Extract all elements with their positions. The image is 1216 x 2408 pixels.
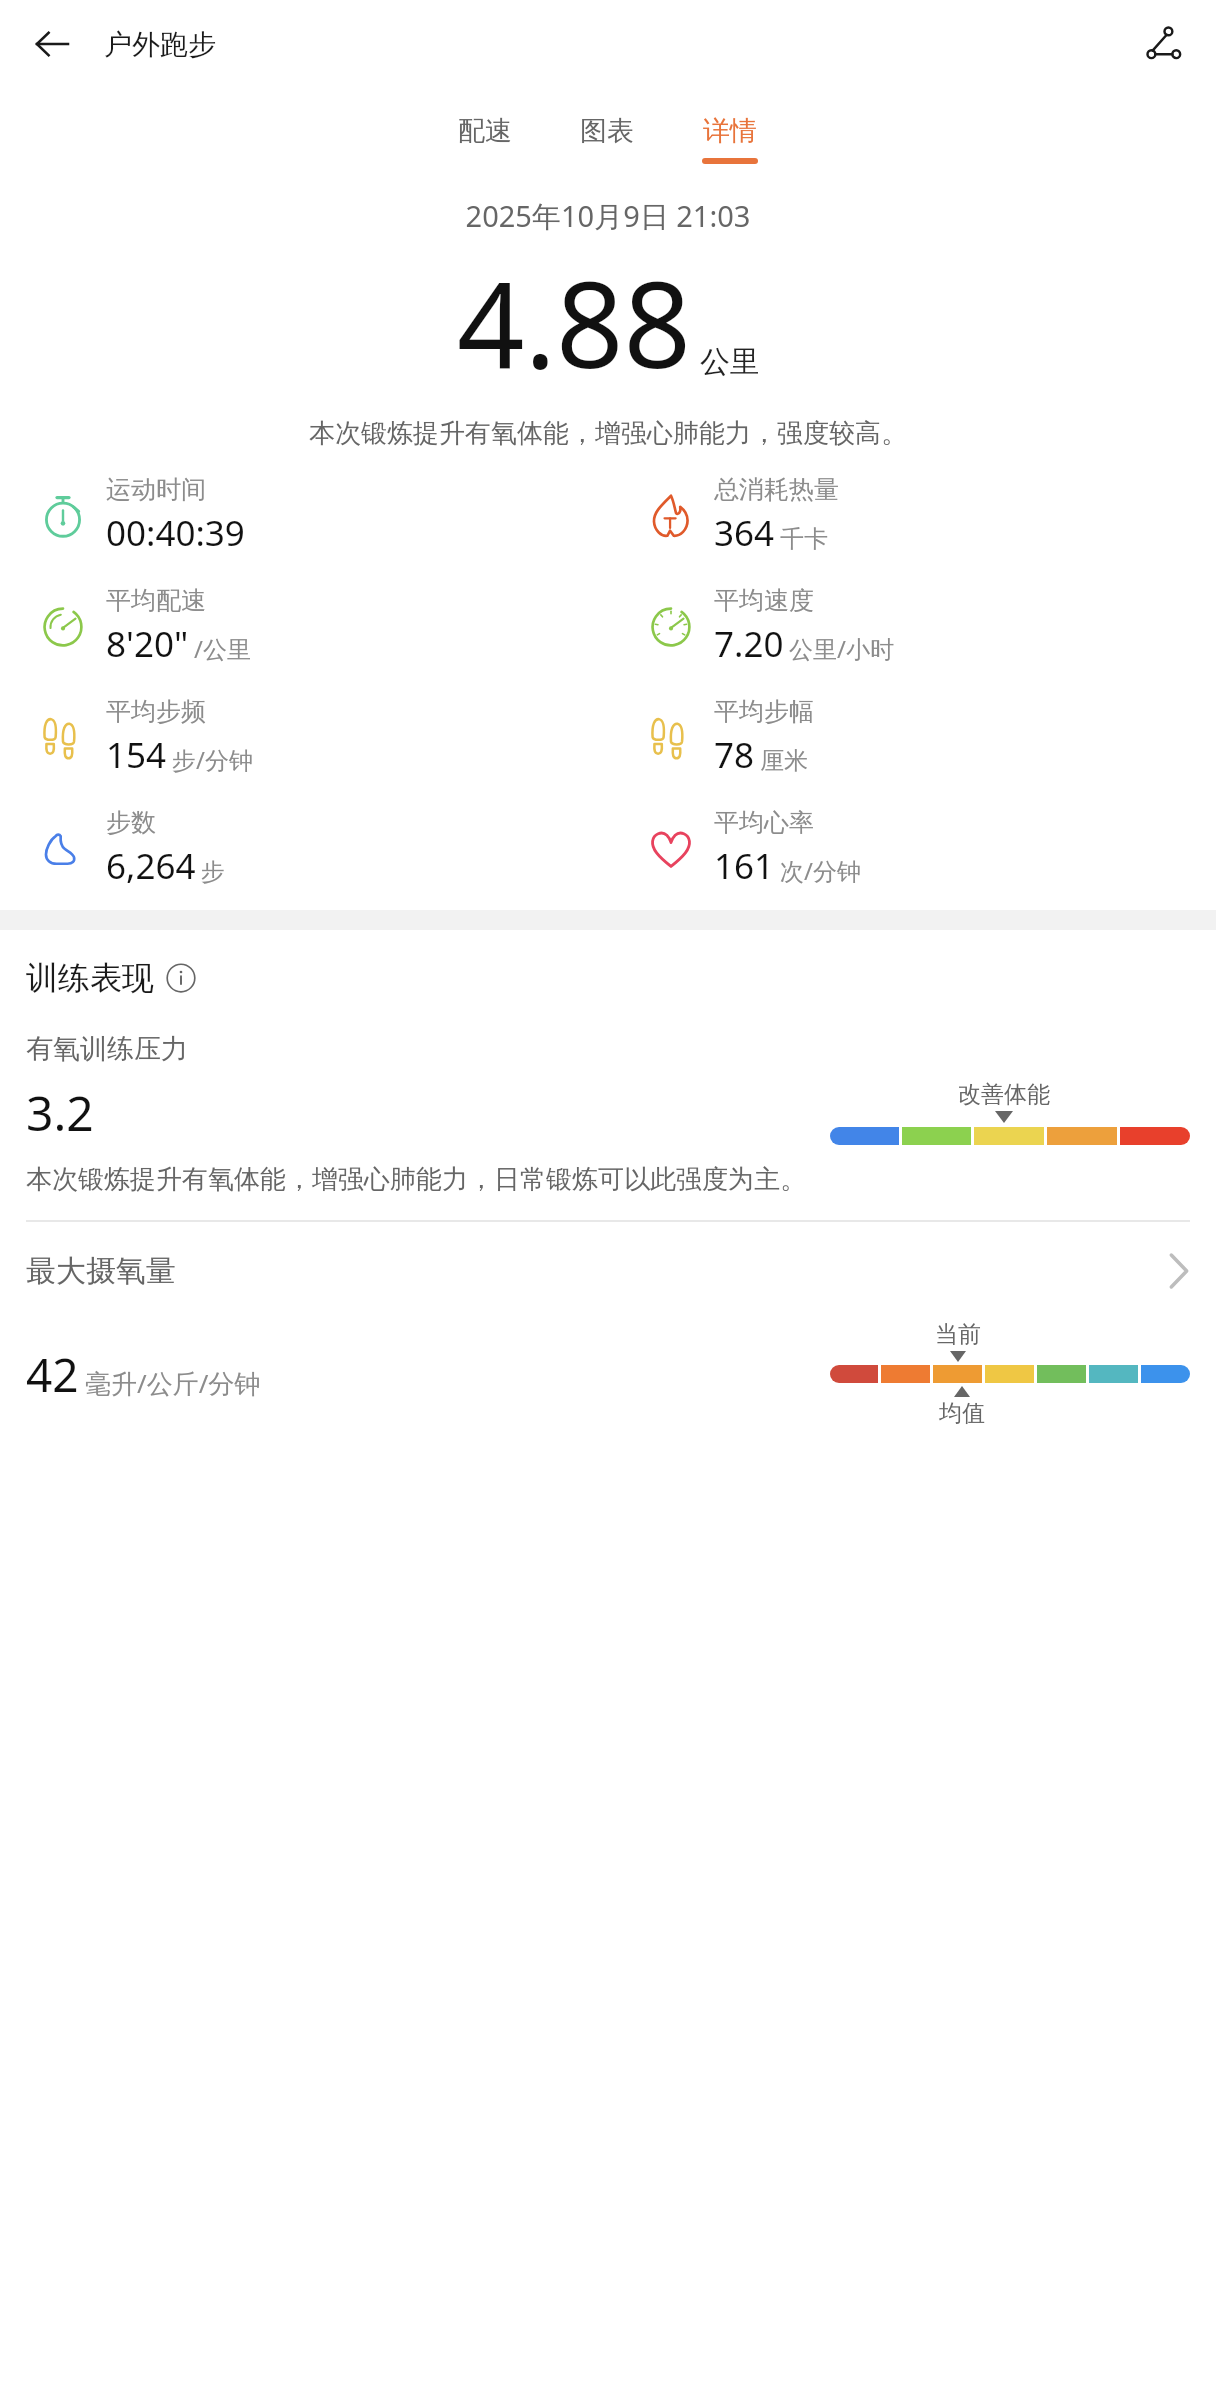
button[interactable]: 详情 [692, 110, 768, 168]
staticText: 户外跑步 [104, 27, 216, 62]
button[interactable]: 配速 [448, 110, 522, 168]
staticText: 运动时间 [106, 474, 206, 505]
staticText: 详情 [703, 114, 757, 148]
staticText: 步数 [106, 807, 156, 838]
button[interactable]: 平均步幅 [608, 694, 1216, 781]
staticText: 2025年10月9日 21:03 [0, 196, 1216, 236]
staticText: /公里 [194, 632, 251, 665]
button[interactable]: Share [1136, 16, 1192, 72]
staticText: 本次锻炼提升有氧体能，增强心肺能力，日常锻炼可以此强度为主。 [26, 1163, 806, 1196]
staticText: 训练表现 [26, 958, 154, 998]
staticText: 千卡 [780, 524, 828, 554]
button[interactable]: Back [24, 16, 80, 72]
button[interactable]: 平均速度 [608, 583, 1216, 670]
staticText: 00:40:39 [106, 509, 245, 557]
staticText: 本次锻炼提升有氧体能，增强心肺能力，强度较高。 [24, 417, 1192, 450]
staticText: 6,264 [106, 842, 196, 890]
staticText: 4.88 [457, 242, 692, 403]
button[interactable]: 平均步频 [0, 694, 608, 781]
staticText: 厘米 [760, 746, 808, 776]
staticText: 公里/小时 [789, 632, 894, 665]
staticText: 8'20" [106, 620, 189, 668]
staticText: 7.20 [714, 620, 784, 668]
staticText: 平均心率 [714, 807, 814, 838]
staticText: 平均速度 [714, 585, 814, 616]
staticText: 42 [26, 1343, 79, 1406]
button[interactable]: 运动时间 [0, 472, 608, 559]
staticText: 改善体能 [958, 1080, 1050, 1109]
staticText: 公里 [700, 343, 760, 381]
staticText: 当前 [935, 1320, 981, 1349]
staticText: 次/分钟 [780, 854, 861, 887]
staticText: 步 [201, 857, 225, 887]
staticText: 78 [714, 731, 755, 779]
staticText: 最大摄氧量 [26, 1252, 176, 1290]
staticText: 配速 [458, 114, 512, 148]
button[interactable]: 步数 [0, 805, 608, 892]
button[interactable]: 平均心率 [608, 805, 1216, 892]
staticText: 均值 [939, 1399, 985, 1428]
staticText: 图表 [580, 114, 634, 148]
button[interactable]: 平均配速 [0, 583, 608, 670]
staticText: 平均配速 [106, 585, 206, 616]
staticText: 平均步幅 [714, 696, 814, 727]
button[interactable]: 训练表现 [26, 958, 196, 998]
button[interactable]: 图表 [570, 110, 644, 168]
other: Info [166, 963, 196, 993]
staticText: 364 [714, 509, 775, 557]
staticText: 3.2 [26, 1080, 94, 1145]
staticText: 161 [714, 842, 775, 890]
staticText: 平均步频 [106, 696, 206, 727]
button[interactable]: 总消耗热量 [608, 472, 1216, 559]
staticText: 有氧训练压力 [26, 1032, 188, 1066]
staticText: 步/分钟 [172, 743, 253, 776]
staticText: 154 [106, 731, 167, 779]
button[interactable]: 最大摄氧量 [26, 1252, 1190, 1290]
staticText: 总消耗热量 [714, 474, 839, 505]
staticText: 毫升/公斤/分钟 [85, 1365, 261, 1401]
